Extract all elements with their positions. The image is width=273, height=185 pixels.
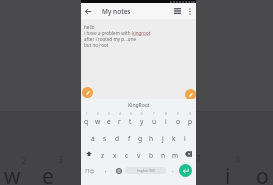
button[interactable]: j <box>157 128 168 145</box>
button[interactable]: 4 <box>114 111 125 128</box>
staticText: 8 <box>165 112 167 116</box>
staticText: g <box>138 134 143 143</box>
staticText: f <box>128 134 131 143</box>
staticText: 1 <box>86 112 88 116</box>
staticText: , <box>105 166 107 174</box>
staticText: o <box>256 162 269 185</box>
button[interactable]: a <box>87 128 99 145</box>
staticText: p <box>188 117 193 126</box>
staticText: c <box>125 151 129 160</box>
button[interactable]: g <box>135 128 146 145</box>
button[interactable]: English (US) <box>125 167 166 174</box>
staticText: 6 <box>141 112 143 116</box>
staticText: after i rooted my p...one <box>84 36 137 42</box>
staticText: i <box>165 117 167 126</box>
button[interactable]: h <box>146 128 157 145</box>
button[interactable]: Enter <box>179 164 192 177</box>
staticText: ?1☺ <box>85 168 95 174</box>
staticText: n <box>161 151 166 160</box>
button[interactable]: 3 <box>103 111 114 128</box>
staticText: 3 <box>58 154 63 165</box>
button[interactable]: Change keyboard language <box>112 162 125 179</box>
button[interactable]: More options <box>184 3 195 19</box>
button[interactable]: s <box>99 128 111 145</box>
staticText: b <box>149 151 154 160</box>
staticText: English (US) <box>137 169 155 173</box>
staticText: . <box>172 166 174 174</box>
staticText: z <box>101 151 105 160</box>
staticText: but no root <box>84 42 109 48</box>
staticText: 0 <box>189 112 191 116</box>
staticText: e <box>42 162 54 185</box>
staticText: 2 <box>97 112 99 116</box>
button[interactable]: 9 <box>172 111 184 128</box>
button[interactable]: n <box>157 145 169 162</box>
staticText: u <box>152 117 157 126</box>
button[interactable]: Shift <box>81 145 96 162</box>
staticText: h <box>149 134 154 143</box>
staticText: 2 <box>22 155 27 166</box>
staticText: v <box>137 151 141 160</box>
staticText: 8 <box>236 154 241 165</box>
button[interactable]: , <box>99 162 112 179</box>
staticText: 4 <box>119 112 121 116</box>
button[interactable]: 1 <box>81 111 92 128</box>
staticText: hello <box>84 24 95 30</box>
staticText: r <box>118 117 121 126</box>
button[interactable]: x <box>109 145 121 162</box>
button[interactable]: 7 <box>148 111 160 128</box>
staticText: m <box>172 151 179 160</box>
staticText: 5 <box>130 112 132 116</box>
button[interactable]: 0 <box>184 111 196 128</box>
staticText: d <box>115 134 120 143</box>
button[interactable]: 5 <box>125 111 136 128</box>
button[interactable]: k <box>168 128 179 145</box>
staticText: o <box>176 117 180 126</box>
staticText: i have a problem with <box>84 30 132 36</box>
button[interactable]: Backspace <box>181 145 196 162</box>
button[interactable]: View as list <box>170 3 184 19</box>
button[interactable]: f <box>123 128 135 145</box>
staticText: k <box>172 134 176 143</box>
staticText: e <box>107 117 111 126</box>
button[interactable]: . <box>166 162 179 179</box>
staticText: w <box>4 162 21 185</box>
staticText: s <box>103 134 107 143</box>
button[interactable]: b <box>145 145 157 162</box>
button[interactable]: Symbols <box>81 162 99 179</box>
button[interactable]: Add note <box>185 89 196 100</box>
button[interactable]: c <box>121 145 133 162</box>
staticText: 3 <box>108 112 110 116</box>
staticText: i <box>225 162 231 185</box>
staticText: My notes <box>102 7 131 16</box>
staticText: 7 <box>153 112 155 116</box>
staticText: q <box>84 117 89 126</box>
staticText: l <box>184 134 186 143</box>
button[interactable]: 2 <box>92 111 103 128</box>
button[interactable]: 6 <box>136 111 148 128</box>
staticText: KingRoot <box>128 102 150 109</box>
button[interactable]: z <box>96 145 109 162</box>
button[interactable]: KingRoot <box>81 99 196 111</box>
staticText: 9 <box>177 112 179 116</box>
button[interactable]: v <box>133 145 145 162</box>
staticText: 7 <box>196 153 201 164</box>
button[interactable]: m <box>169 145 181 162</box>
staticText: w <box>95 117 101 126</box>
staticText: kingroot <box>132 30 151 36</box>
staticText: y <box>140 117 144 126</box>
button[interactable]: d <box>111 128 123 145</box>
staticText: x <box>113 151 117 160</box>
staticText: j <box>162 134 164 143</box>
button[interactable]: l <box>179 128 190 145</box>
staticText: t <box>129 117 132 126</box>
button[interactable]: Edit note <box>82 87 93 98</box>
button[interactable]: 8 <box>160 111 172 128</box>
button[interactable]: Back <box>81 3 95 19</box>
staticText: a <box>91 134 95 143</box>
